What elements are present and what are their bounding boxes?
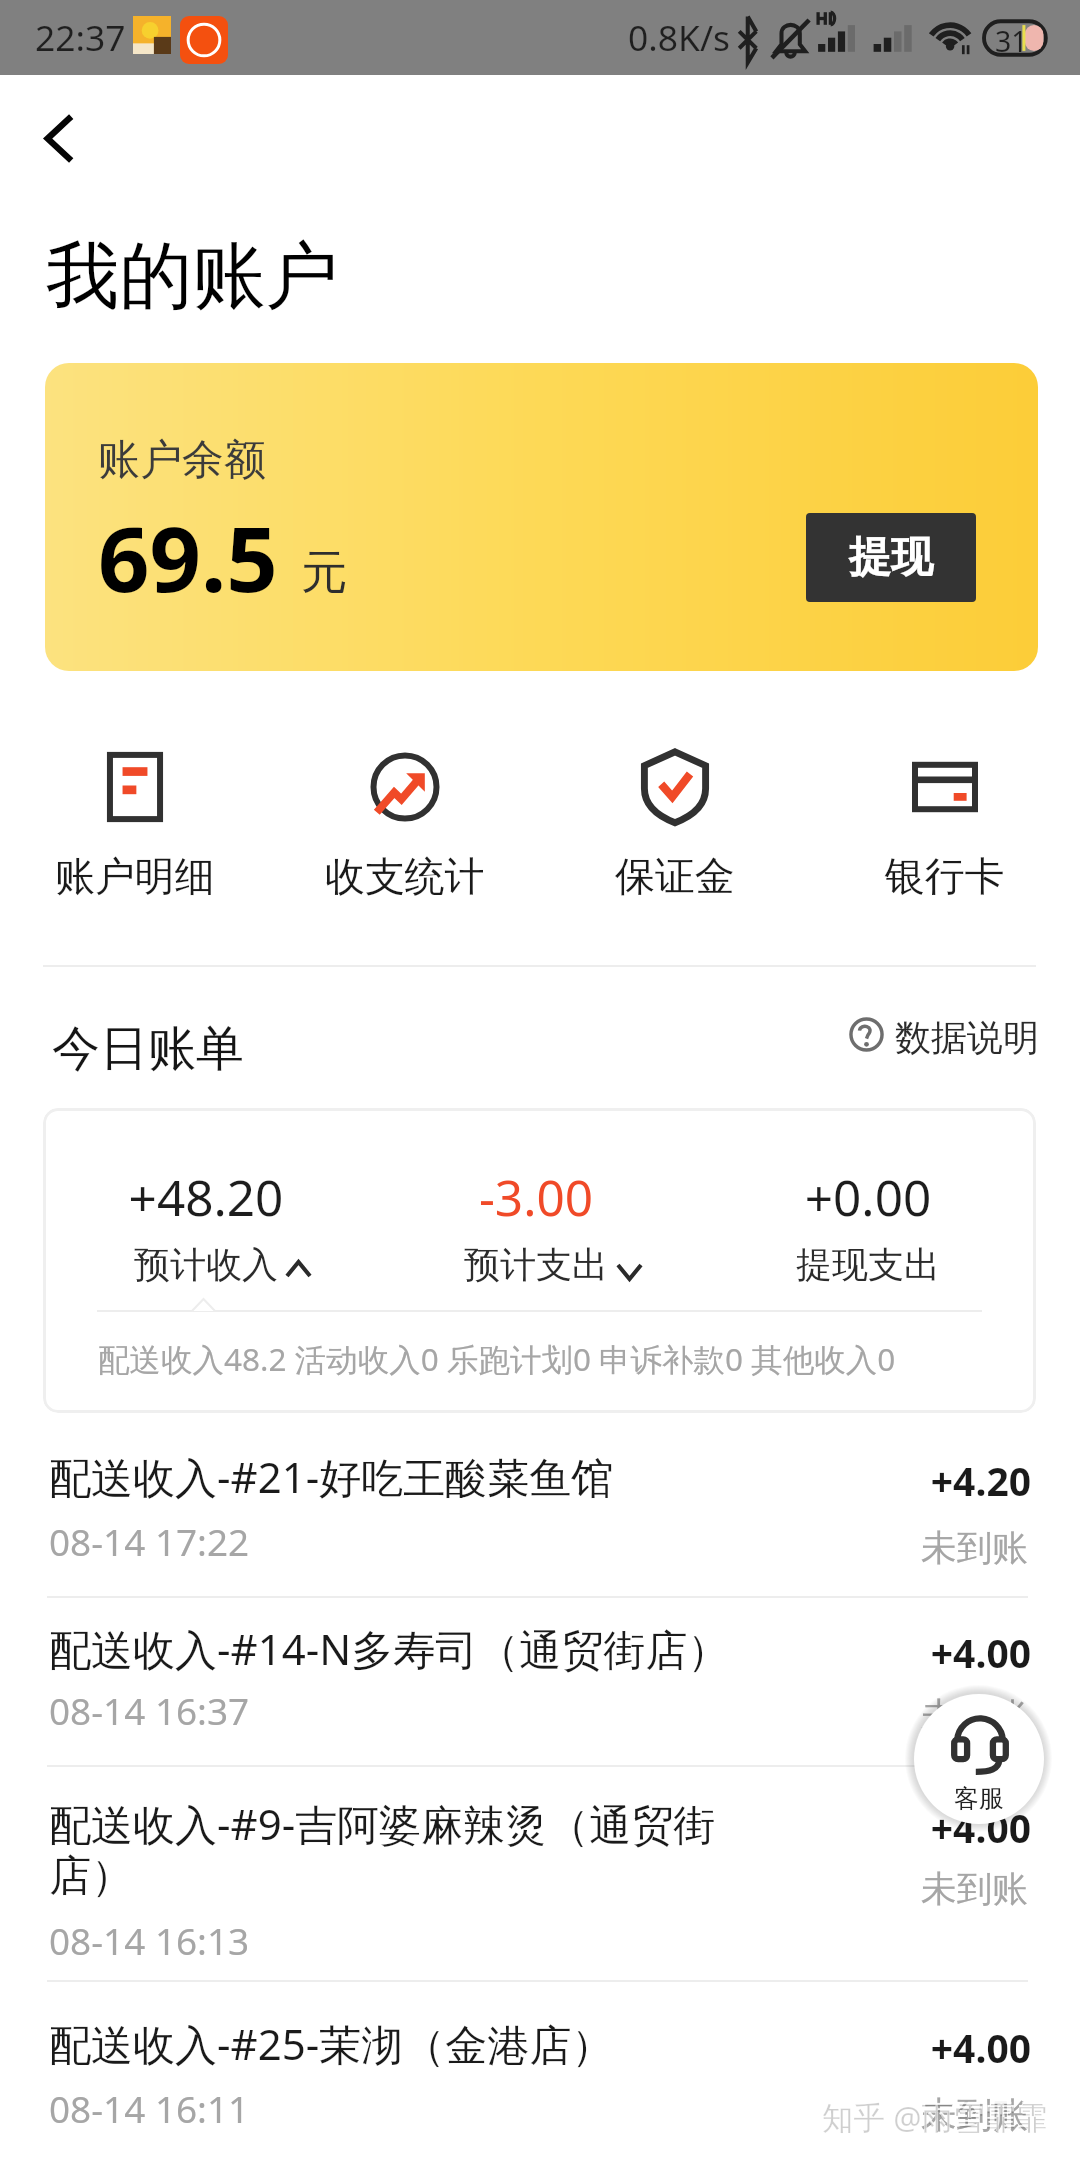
staticText: 我的账户 [46, 231, 339, 323]
staticText: 08-14 16:37 [49, 1686, 250, 1736]
staticText: 提现支出 [718, 1242, 1018, 1287]
button[interactable]: 数据说明 [843, 1011, 1038, 1059]
button[interactable]: 银行卡 [810, 729, 1080, 903]
staticText: 预计支出 [386, 1242, 686, 1287]
staticText: +4.00 [735, 2021, 1031, 2074]
staticText: 账户余额 [98, 434, 266, 487]
staticText: 08-14 16:13 [49, 1916, 250, 1966]
staticText: 未到账 [735, 2093, 1028, 2138]
staticText: +0.00 [718, 1163, 1018, 1230]
button[interactable] [0, 1766, 1080, 1978]
button[interactable]: 账户余额 [45, 363, 1038, 671]
staticText: +48.20 [56, 1163, 356, 1230]
button[interactable]: Back [5, 75, 137, 207]
staticText: 配送收入-#21-好吃王酸菜鱼馆 [49, 1448, 829, 1505]
staticText: 31 [995, 22, 1028, 61]
staticText: 保证金 [615, 852, 735, 902]
staticText: 银行卡 [885, 852, 1005, 902]
staticText: 未到账 [735, 1867, 1028, 1912]
button[interactable]: 客服 customer service [914, 1694, 1044, 1824]
staticText: +4.00 [735, 1801, 1031, 1854]
staticText: 数据说明 [895, 1015, 1039, 1060]
staticText: 知乎 @雨雪霏霏 [822, 2093, 1048, 2136]
staticText: 配送收入-#9-吉阿婆麻辣烫（通贸街 店） [49, 1795, 829, 1903]
button[interactable] [0, 1982, 1080, 2160]
staticText: 08-14 17:22 [49, 1517, 250, 1567]
staticText: +4.20 [735, 1454, 1031, 1507]
staticText: 知乎 @雨雪霏霏 [822, 2095, 1048, 2138]
staticText: 08-14 16:11 [49, 2084, 250, 2134]
staticText: 预计收入 [56, 1242, 356, 1287]
staticText: 未到账 [735, 1526, 1028, 1571]
staticText: 元 [301, 543, 348, 602]
button[interactable]: 账户明细 [0, 729, 270, 903]
button[interactable]: 保证金 [540, 729, 810, 903]
staticText: 客服 [954, 1783, 1004, 1814]
staticText: 配送收入48.2 活动收入0 乐跑计划0 申诉补款0 其他收入0 [98, 1337, 896, 1380]
button[interactable]: 提现 [806, 513, 976, 602]
button[interactable]: 收支统计 [270, 729, 540, 903]
staticText: 22:37 [35, 13, 126, 61]
staticText: 提现 [849, 531, 933, 584]
staticText: 配送收入-#14-N多寿司（通贸街店） [49, 1620, 829, 1677]
staticText: -3.00 [386, 1163, 686, 1230]
staticText: 69.5 [98, 496, 278, 619]
button[interactable] [0, 1413, 1080, 1595]
staticText: +4.00 [735, 1626, 1031, 1679]
staticText: 配送收入-#25-茉沏（金港店） [49, 2015, 829, 2072]
staticText: 账户明细 [55, 852, 215, 902]
staticText: 收支统计 [325, 852, 485, 902]
staticText: 0.8K/s [628, 13, 730, 61]
button[interactable] [0, 1598, 1080, 1764]
staticText: 今日账单 [52, 1019, 244, 1079]
staticText: 未到账 [735, 1694, 1028, 1739]
